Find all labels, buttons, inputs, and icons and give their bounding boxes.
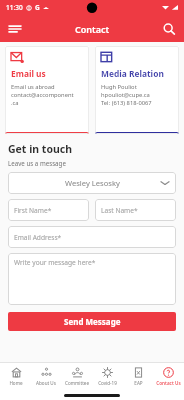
button[interactable]: Last Name* xyxy=(95,199,176,221)
staticText: Leave us a message xyxy=(8,159,66,167)
staticText: Last Name* xyxy=(101,206,138,215)
button[interactable]: About Us xyxy=(31,365,61,388)
staticText: .ca xyxy=(11,99,19,107)
staticText: contact@accomponent xyxy=(11,91,74,99)
staticText: Get in touch xyxy=(8,142,73,156)
staticText: Write your message here* xyxy=(14,258,96,267)
button[interactable]: Menu xyxy=(4,18,26,40)
button[interactable]: Email Address* xyxy=(8,226,176,248)
staticText: Tel: (613) 818-0067 xyxy=(101,99,152,107)
staticText: Wesley Lesosky xyxy=(65,178,120,188)
button[interactable]: Media Relation xyxy=(95,46,179,134)
button[interactable]: Search xyxy=(158,18,180,40)
button[interactable]: Committee xyxy=(62,365,92,388)
button[interactable]: Wesley Lesosky xyxy=(8,172,176,194)
staticText: About Us xyxy=(36,380,56,386)
button[interactable]: Covid-19 xyxy=(92,365,122,388)
staticText: Home xyxy=(9,380,23,386)
staticText: Committee xyxy=(65,380,89,386)
staticText: hpouliot@cupe.ca xyxy=(101,91,150,99)
staticText: Email Address* xyxy=(14,233,62,242)
staticText: 11:30 xyxy=(6,3,23,12)
staticText: EAP xyxy=(134,380,143,386)
button[interactable]: Home xyxy=(1,365,31,388)
staticText: Covid-19 xyxy=(98,380,117,386)
staticText: G xyxy=(35,3,40,12)
staticText: Media Relation xyxy=(101,68,164,79)
staticText: First Name* xyxy=(14,206,52,215)
button[interactable]: Email us xyxy=(5,46,89,134)
button[interactable]: Contact Us xyxy=(153,365,183,388)
button[interactable]: Write your message here* xyxy=(8,253,176,305)
button[interactable]: EAP xyxy=(123,365,153,388)
staticText: Contact xyxy=(75,23,110,35)
staticText: Hugh Pouliot xyxy=(101,83,137,91)
staticText: Contact Us xyxy=(156,380,181,386)
staticText: Email us abroad xyxy=(11,83,55,91)
staticText: Email us xyxy=(11,68,46,79)
button[interactable]: Send Message xyxy=(8,312,176,331)
staticText: Send Message xyxy=(64,316,121,327)
button[interactable]: First Name* xyxy=(8,199,89,221)
